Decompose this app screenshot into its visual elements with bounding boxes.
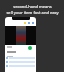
staticText: sell your item fast and easy — [6, 10, 59, 15]
staticText: second-hand means — [13, 4, 52, 9]
button[interactable] — [5, 17, 36, 72]
